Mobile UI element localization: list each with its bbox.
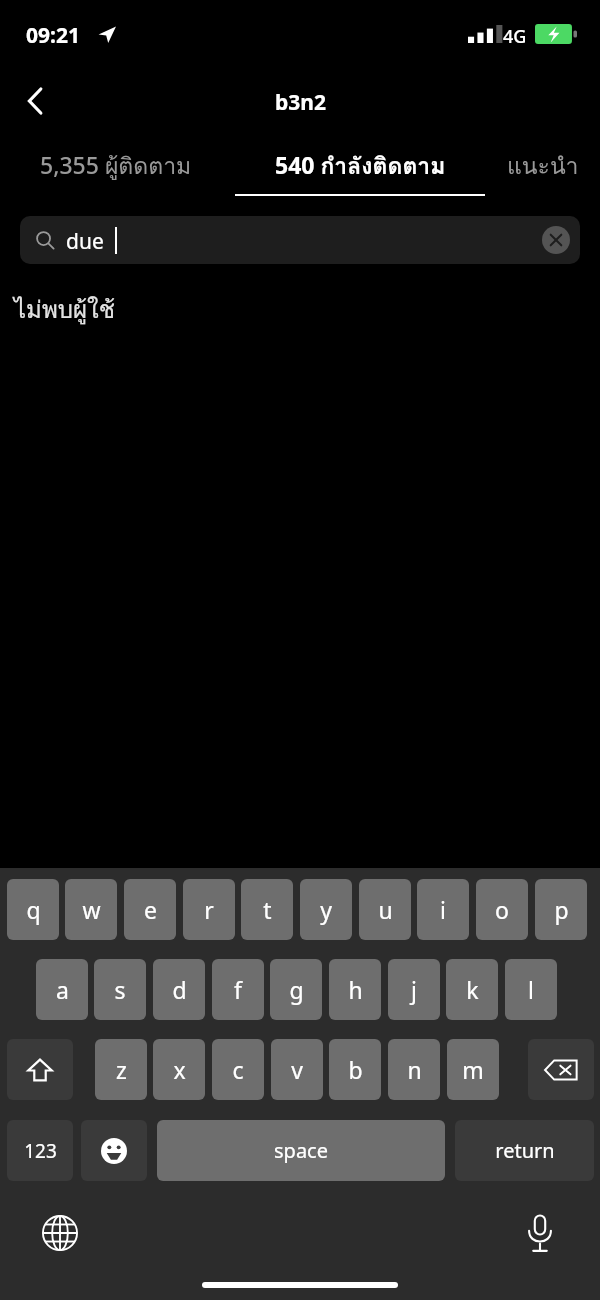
staticText: d — [172, 974, 187, 1005]
staticText: c — [232, 1054, 244, 1085]
button[interactable]: z — [95, 1039, 147, 1100]
button[interactable]: t — [241, 879, 293, 940]
button[interactable]: s — [94, 959, 146, 1020]
staticText: q — [26, 894, 41, 925]
staticText: b — [348, 1054, 363, 1085]
button[interactable]: Clear text — [542, 226, 570, 254]
staticText: l — [528, 974, 534, 1005]
staticText: 123 — [24, 1138, 57, 1164]
button[interactable]: q — [7, 879, 59, 940]
button[interactable]: g — [270, 959, 322, 1020]
staticText: x — [173, 1054, 186, 1085]
button[interactable]: 123 — [7, 1120, 73, 1181]
staticText: f — [234, 974, 242, 1005]
staticText: j — [411, 974, 417, 1005]
staticText: v — [291, 1054, 303, 1085]
button[interactable]: x — [153, 1039, 205, 1100]
staticText: due — [66, 227, 104, 256]
staticText: a — [56, 974, 69, 1005]
staticText: y — [320, 894, 332, 925]
staticText: space — [274, 1137, 328, 1164]
button[interactable]: Backspace — [528, 1039, 594, 1100]
staticText: z — [116, 1054, 127, 1085]
button[interactable]: space — [157, 1120, 445, 1181]
staticText: r — [204, 894, 214, 925]
button[interactable]: k — [446, 959, 498, 1020]
staticText: 5,355 ผู้ติดตาม — [40, 148, 192, 185]
button[interactable]: Back — [8, 74, 64, 128]
button[interactable]: f — [212, 959, 264, 1020]
button[interactable]: i — [417, 879, 469, 940]
staticText: w — [82, 894, 101, 925]
button[interactable]: a — [36, 959, 88, 1020]
staticText: e — [144, 894, 157, 925]
button[interactable]: Shift — [7, 1039, 73, 1100]
button[interactable]: d — [153, 959, 205, 1020]
staticText: g — [289, 974, 304, 1005]
button[interactable]: v — [271, 1039, 323, 1100]
button[interactable]: l — [505, 959, 557, 1020]
button[interactable]: Voice input — [510, 1203, 570, 1263]
staticText: b3n2 — [275, 88, 326, 117]
button[interactable]: h — [329, 959, 381, 1020]
button[interactable]: due — [20, 216, 580, 264]
staticText: s — [114, 974, 126, 1005]
staticText: ไม่พบผู้ใช้ — [14, 290, 116, 328]
button[interactable]: 5,355 ผู้ติดตาม — [0, 138, 232, 194]
staticText: o — [495, 894, 509, 925]
button[interactable]: e — [124, 879, 176, 940]
staticText: n — [407, 1054, 422, 1085]
staticText: return — [495, 1137, 555, 1164]
staticText: แนะนำ — [507, 148, 579, 185]
button[interactable]: o — [476, 879, 528, 940]
button[interactable]: w — [65, 879, 117, 940]
staticText: 09:21 — [26, 21, 80, 50]
button[interactable]: n — [388, 1039, 440, 1100]
button[interactable]: Emoji — [81, 1120, 147, 1181]
button[interactable]: u — [359, 879, 411, 940]
button[interactable]: m — [447, 1039, 499, 1100]
staticText: 4G — [503, 24, 527, 49]
staticText: h — [348, 974, 363, 1005]
staticText: 540 กำลังติดตาม — [275, 148, 446, 185]
staticText: k — [466, 974, 479, 1005]
staticText: t — [263, 894, 272, 925]
button[interactable]: return — [455, 1120, 594, 1181]
button[interactable]: แนะนำ — [486, 138, 600, 194]
button[interactable]: y — [300, 879, 352, 940]
staticText: p — [554, 894, 569, 925]
button[interactable]: Change keyboard language — [30, 1203, 90, 1263]
button[interactable]: j — [388, 959, 440, 1020]
button[interactable]: 540 กำลังติดตาม — [234, 138, 486, 194]
button[interactable]: c — [212, 1039, 264, 1100]
staticText: i — [440, 894, 446, 925]
button[interactable]: r — [183, 879, 235, 940]
button[interactable]: p — [535, 879, 587, 940]
staticText: m — [462, 1054, 484, 1085]
staticText: u — [378, 894, 393, 925]
button[interactable]: b — [329, 1039, 381, 1100]
